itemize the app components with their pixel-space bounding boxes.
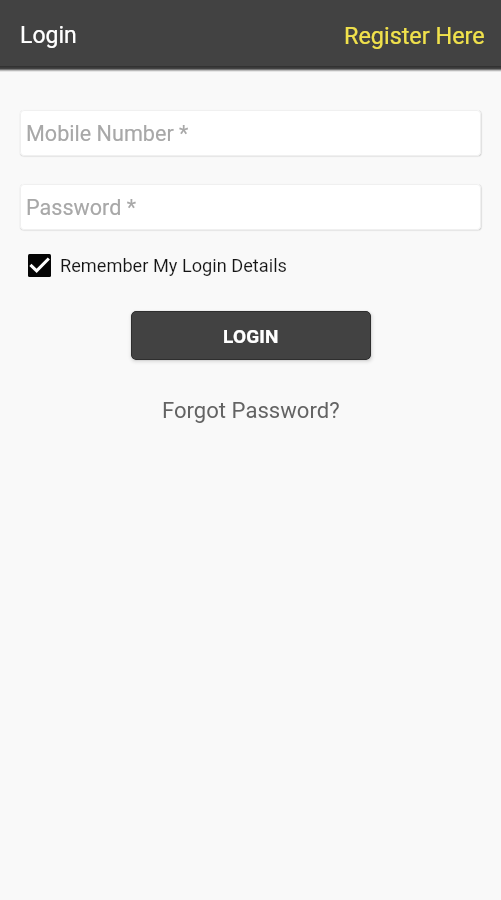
- button[interactable]: Register Here: [332, 18, 501, 49]
- staticText: Mobile Number *: [26, 121, 189, 146]
- staticText: Login: [20, 22, 77, 49]
- staticText: Password *: [26, 195, 137, 220]
- button[interactable]: Remember my login details, checked: [20, 251, 295, 280]
- staticText: Remember My Login Details: [60, 255, 287, 276]
- button[interactable]: Login: [0, 18, 85, 49]
- button[interactable]: Mobile Number *: [20, 110, 481, 156]
- button[interactable]: LOGIN: [131, 311, 371, 360]
- staticText: LOGIN: [223, 325, 279, 347]
- other: Remember my login details, checked: [28, 254, 51, 277]
- staticText: Register Here: [344, 22, 485, 49]
- staticText: Forgot Password?: [162, 397, 340, 423]
- button[interactable]: Password *: [20, 184, 481, 230]
- button[interactable]: Forgot Password?: [152, 393, 350, 427]
